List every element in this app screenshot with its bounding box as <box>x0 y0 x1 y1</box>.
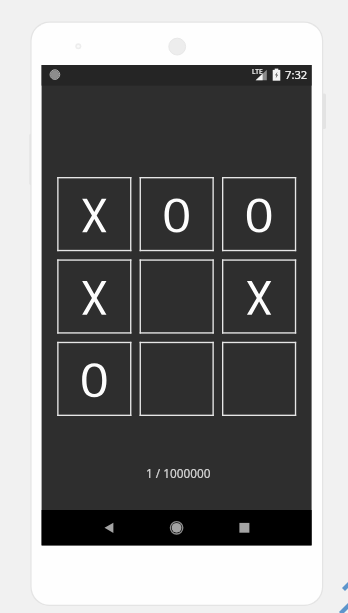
button[interactable]: Board cell 4 <box>57 259 131 333</box>
button[interactable]: Board cell 2 <box>140 177 214 251</box>
button[interactable]: Board cell 9 <box>222 342 296 416</box>
button[interactable]: Board cell 5 <box>140 259 214 333</box>
button[interactable]: Home <box>160 510 194 545</box>
button[interactable]: Back <box>92 510 126 545</box>
staticText: 7:32 <box>285 67 308 82</box>
button[interactable]: Board cell 1 <box>57 177 131 251</box>
button[interactable]: Recent apps <box>227 510 261 545</box>
staticText: LTE <box>252 67 263 76</box>
button[interactable]: Board cell 3 <box>222 177 296 251</box>
staticText: 1 / 1000000 <box>146 465 211 481</box>
button[interactable]: Board cell 6 <box>222 259 296 333</box>
button[interactable]: Board cell 8 <box>140 342 214 416</box>
button[interactable]: Board cell 7 <box>57 342 131 416</box>
